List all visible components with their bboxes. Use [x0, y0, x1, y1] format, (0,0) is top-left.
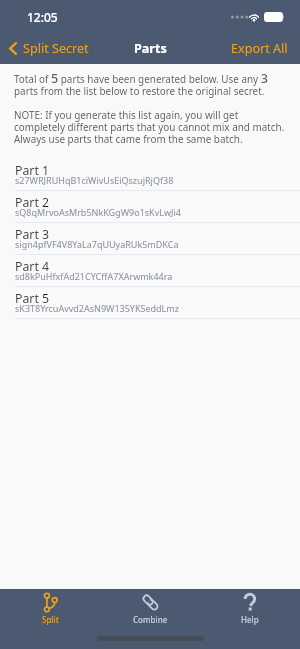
staticText: Part 5: [15, 293, 50, 305]
staticText: NOTE: If you generate this list again, y…: [14, 110, 285, 146]
button[interactable]: Part 2: [0, 191, 300, 223]
staticText: Part 2: [15, 197, 50, 209]
button[interactable]: Part 1: [0, 159, 300, 191]
staticText: Help: [241, 614, 259, 625]
staticText: Part 4: [15, 261, 50, 273]
staticText: Total of 5 parts have been generated bel…: [14, 74, 268, 98]
button[interactable]: Split: [0, 589, 100, 625]
staticText: Part 3: [15, 229, 50, 241]
button[interactable]: Part 4: [0, 255, 300, 287]
staticText: 12:05: [27, 9, 58, 25]
button[interactable]: Part 3: [0, 223, 300, 255]
staticText: Parts: [134, 40, 167, 57]
staticText: Part 1: [15, 165, 50, 177]
button[interactable]: Split Secret: [0, 40, 89, 57]
staticText: Split: [42, 614, 59, 625]
button[interactable]: Export All: [231, 40, 300, 57]
staticText: sK3T8YrcuAvvd2AsN9W135YKSeddLmz: [15, 305, 179, 314]
staticText: sQ8qMrvoAsMrb5NkKGgW9o1sKvLwJi4: [15, 209, 181, 218]
staticText: Split Secret: [23, 40, 89, 57]
button[interactable]: Part 5: [0, 287, 300, 319]
staticText: sign4pfVF4V8YaLa7qUUyaRUk5mDKCa: [15, 241, 179, 250]
staticText: sd8kPuHfxfAd21CYCffA7XArwmk44ra: [15, 273, 173, 282]
staticText: s27WRJRUHqB1ciWivUsEiQszujRjQf38: [15, 177, 174, 186]
button[interactable]: Help: [200, 589, 300, 625]
button[interactable]: Combine: [100, 589, 200, 625]
staticText: Combine: [133, 614, 168, 625]
